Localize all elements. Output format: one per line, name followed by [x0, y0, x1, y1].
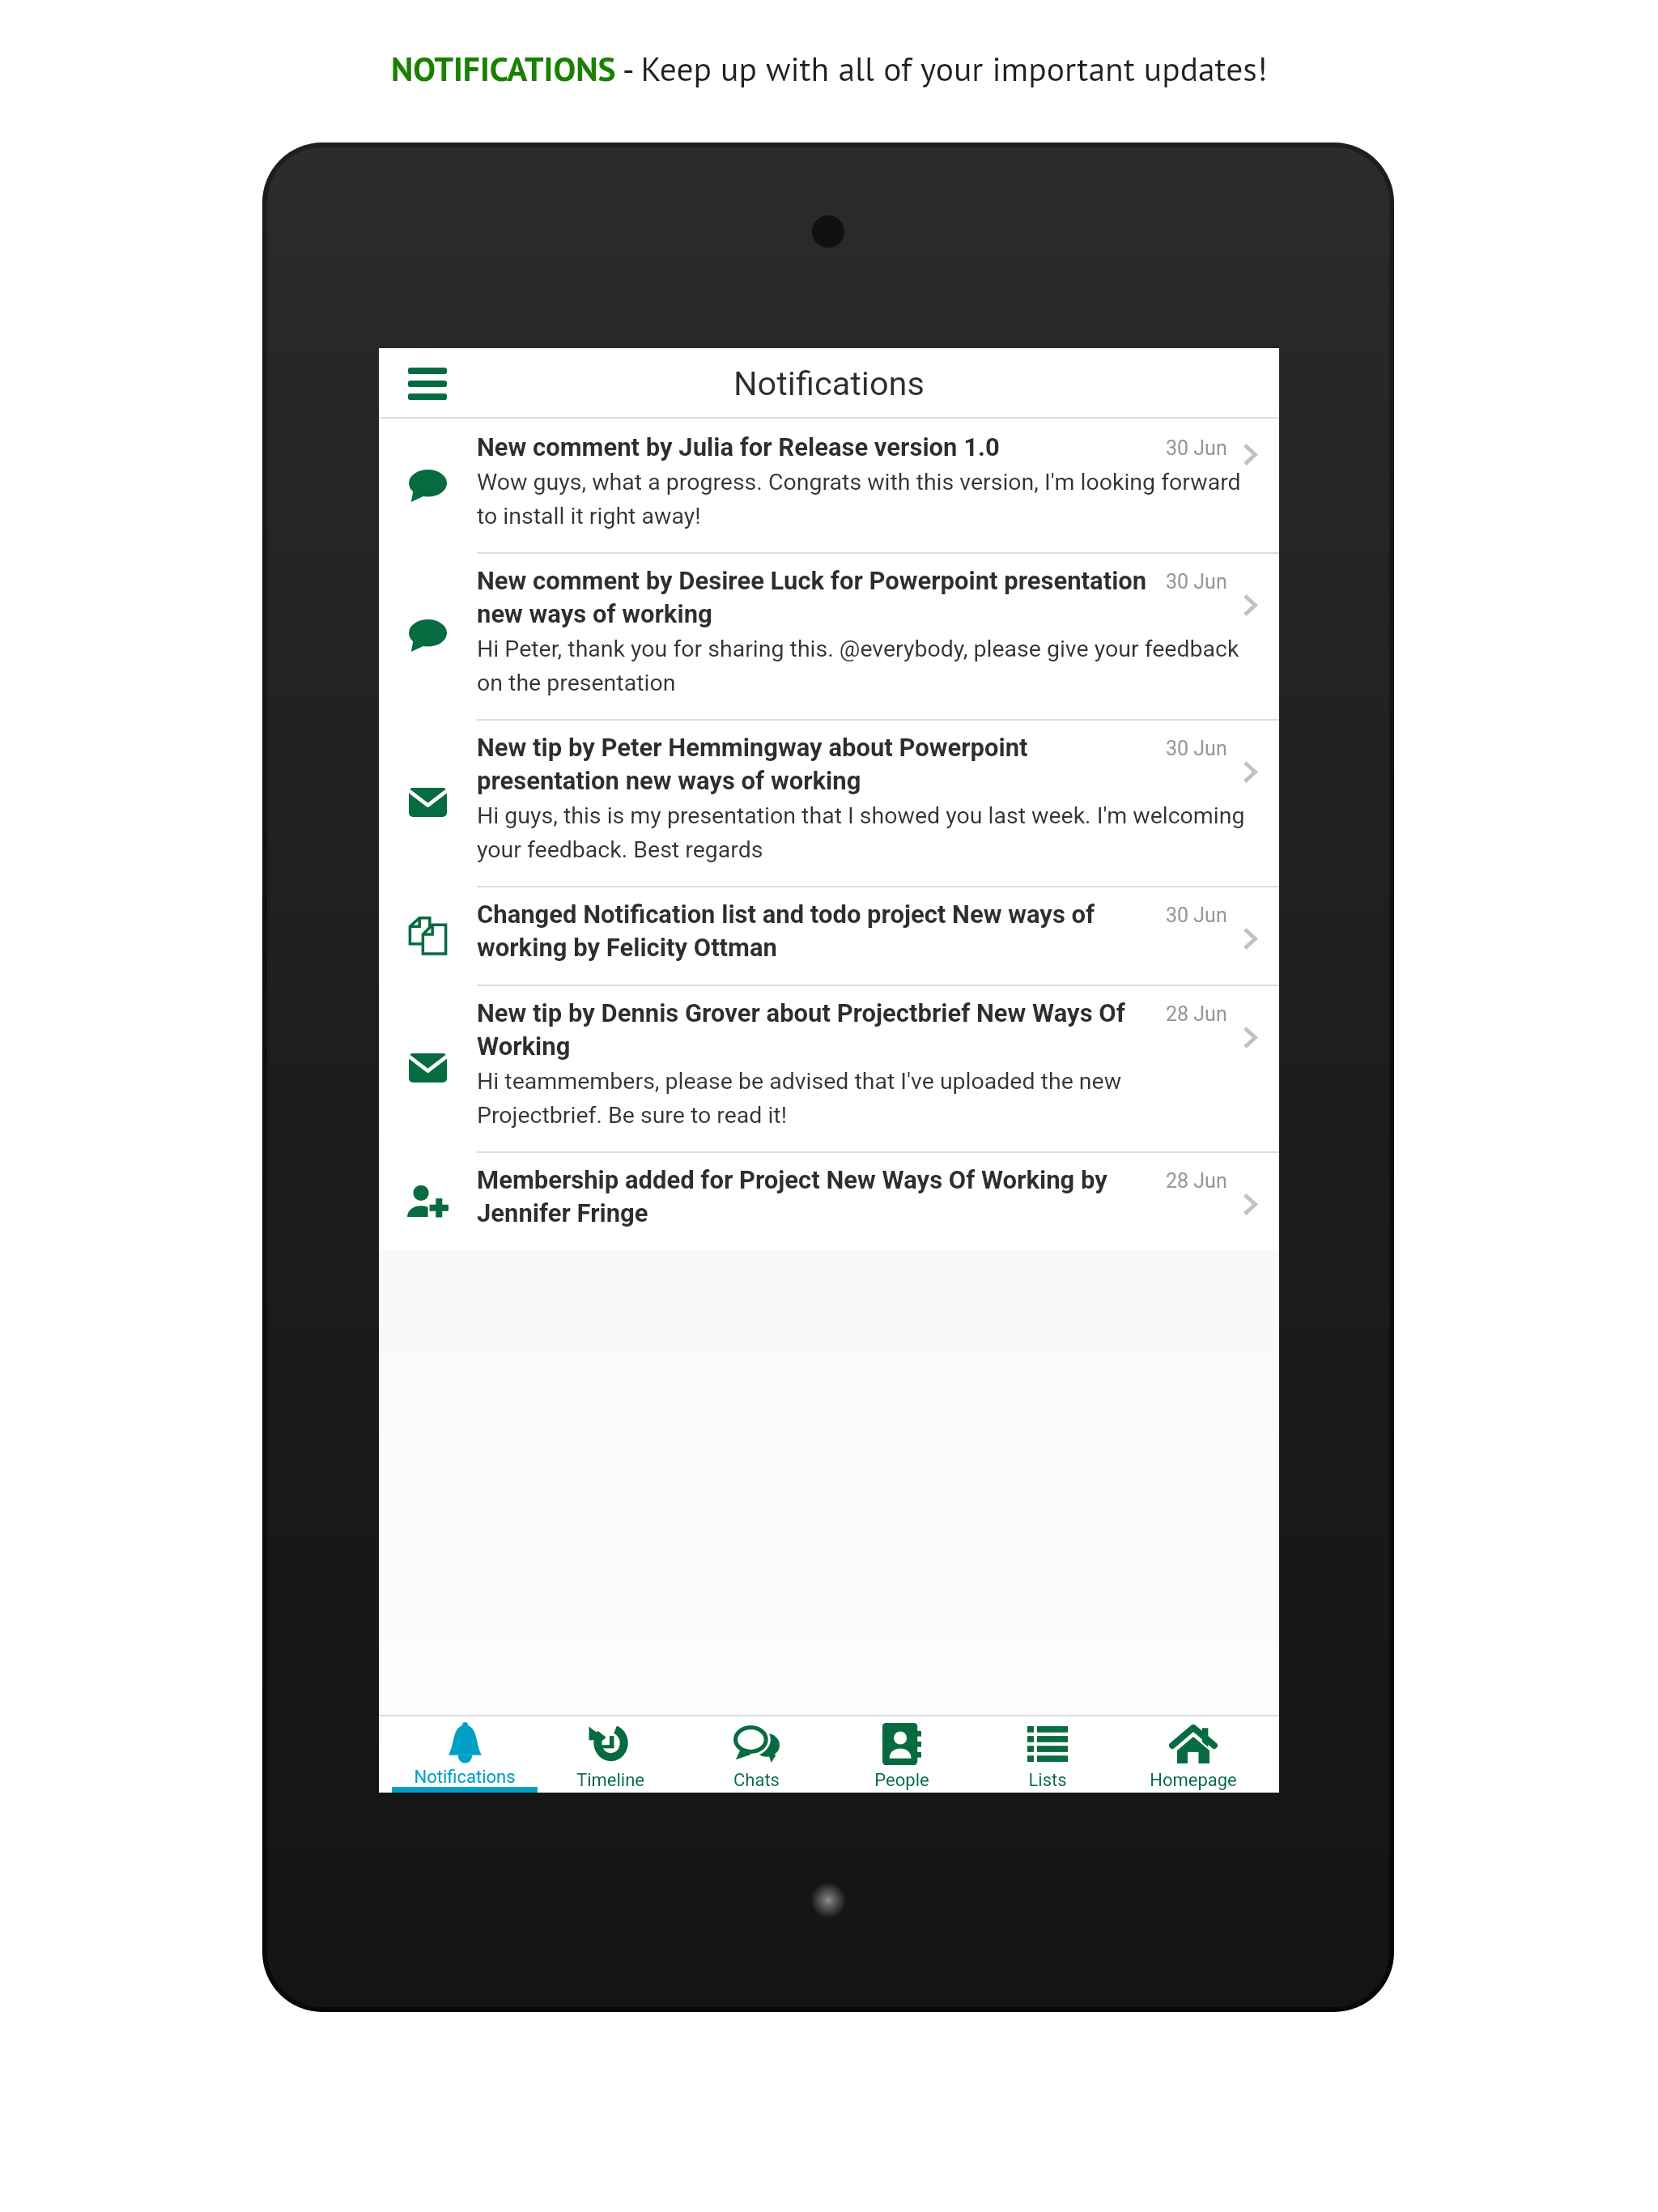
staticText: Hi teammembers, please be advised that I…	[477, 1068, 1247, 1129]
staticText: NOTIFICATIONS	[391, 47, 616, 91]
staticText: Wow guys, what a progress. Congrats with…	[477, 469, 1247, 530]
staticText: New tip by Peter Hemmingway about Powerp…	[477, 733, 1165, 795]
staticText: 30 Jun	[1166, 570, 1227, 593]
staticText: Chats	[733, 1770, 780, 1791]
button[interactable]: Notifications	[392, 1715, 538, 1793]
button[interactable]: Timeline	[538, 1715, 683, 1793]
staticText: 30 Jun	[1166, 737, 1227, 760]
staticText: New comment by Desiree Luck for Powerpoi…	[477, 566, 1165, 628]
staticText: New tip by Dennis Grover about Projectbr…	[477, 998, 1165, 1061]
button[interactable]: Chats	[683, 1715, 829, 1793]
button[interactable]: New comment by Desiree Luck for Powerpoi…	[379, 552, 1279, 719]
button[interactable]: New comment by Julia for Release version…	[379, 419, 1279, 552]
staticText: Homepage	[1150, 1770, 1237, 1791]
staticText: Hi Peter, thank you for sharing this. @e…	[477, 636, 1247, 696]
button[interactable]: People	[829, 1715, 975, 1793]
staticText: - Keep up with all of your important upd…	[616, 47, 1268, 91]
button[interactable]: New tip by Dennis Grover about Projectbr…	[379, 985, 1279, 1151]
staticText: Notifications	[414, 1767, 516, 1788]
button[interactable]: Lists	[975, 1715, 1120, 1793]
staticText: Lists	[1028, 1770, 1067, 1791]
staticText: Membership added for Project New Ways Of…	[477, 1165, 1165, 1227]
staticText: 30 Jun	[1166, 436, 1227, 460]
staticText: 28 Jun	[1166, 1002, 1227, 1026]
staticText: People	[874, 1770, 929, 1791]
button[interactable]: Open navigation menu	[393, 350, 461, 418]
button[interactable]: New tip by Peter Hemmingway about Powerp…	[379, 719, 1279, 886]
staticText: Notifications	[733, 364, 925, 403]
staticText: 30 Jun	[1166, 904, 1227, 927]
staticText: Changed Notification list and todo proje…	[477, 900, 1165, 962]
staticText: Timeline	[576, 1770, 644, 1791]
staticText: New comment by Julia for Release version…	[477, 432, 1000, 462]
button[interactable]: Membership added for Project New Ways Of…	[379, 1151, 1279, 1250]
staticText: Hi guys, this is my presentation that I …	[477, 802, 1247, 863]
staticText: 28 Jun	[1166, 1169, 1227, 1193]
button[interactable]: Changed Notification list and todo proje…	[379, 886, 1279, 985]
button[interactable]: Homepage	[1120, 1715, 1266, 1793]
